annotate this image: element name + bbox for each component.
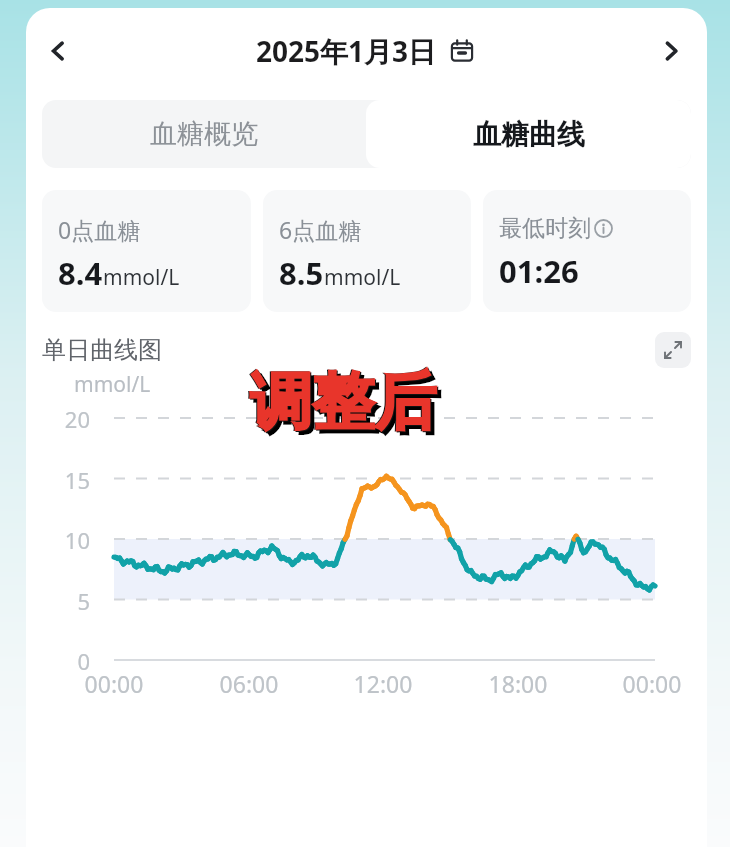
staticText: mmol/L bbox=[103, 263, 180, 292]
staticText: 6点血糖 bbox=[279, 214, 362, 245]
staticText: 18:00 bbox=[473, 668, 563, 699]
button[interactable]: Expand chart bbox=[655, 332, 691, 368]
staticText: 00:00 bbox=[607, 668, 697, 699]
staticText: 调整后 bbox=[251, 364, 437, 442]
staticText: 15 bbox=[54, 465, 90, 495]
staticText: 06:00 bbox=[204, 668, 294, 699]
staticText: 01:26 bbox=[499, 250, 579, 292]
staticText: 12:00 bbox=[338, 668, 428, 699]
button[interactable]: Next day bbox=[647, 27, 695, 75]
button[interactable]: 最低时刻 bbox=[483, 190, 691, 312]
staticText: 调整后 bbox=[249, 363, 435, 441]
staticText: mmol/L bbox=[74, 370, 151, 399]
staticText: 调整后 bbox=[254, 367, 440, 445]
staticText: 00:00 bbox=[69, 668, 159, 699]
button[interactable]: 血糖概览 bbox=[42, 100, 366, 168]
staticText: 0 bbox=[54, 646, 90, 676]
button[interactable]: 6点血糖 bbox=[263, 190, 471, 312]
button[interactable]: Previous day bbox=[34, 27, 82, 75]
staticText: 最低时刻 bbox=[499, 214, 591, 243]
staticText: mmol/L bbox=[324, 263, 401, 292]
staticText: 2025年1月3日 bbox=[256, 32, 437, 70]
staticText: 8.5 bbox=[279, 252, 324, 294]
staticText: 血糖曲线 bbox=[473, 117, 585, 152]
button[interactable]: Pick date bbox=[447, 36, 477, 66]
staticText: 0点血糖 bbox=[58, 214, 141, 245]
staticText: 20 bbox=[54, 404, 90, 434]
staticText: 单日曲线图 bbox=[42, 335, 162, 365]
button[interactable]: 血糖曲线 bbox=[366, 100, 691, 168]
staticText: 10 bbox=[54, 525, 90, 555]
staticText: 调整后 bbox=[250, 363, 436, 441]
staticText: 5 bbox=[54, 586, 90, 616]
button[interactable]: 0点血糖 bbox=[42, 190, 251, 312]
staticText: 8.4 bbox=[58, 252, 103, 294]
staticText: 血糖概览 bbox=[150, 117, 258, 151]
